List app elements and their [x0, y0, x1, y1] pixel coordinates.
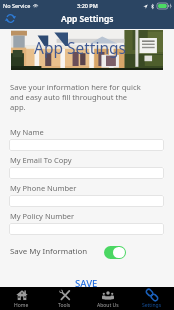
button[interactable]: Save My Information toggle: [104, 246, 126, 259]
staticText: My Email To Copy: [10, 155, 72, 165]
staticText: My Phone Number: [10, 183, 77, 193]
staticText: My Name: [10, 127, 44, 137]
button[interactable]: Refresh: [4, 12, 17, 25]
staticText: App Settings: [34, 37, 126, 58]
button[interactable]: [9, 167, 164, 179]
staticText: About Us: [97, 302, 119, 309]
staticText: 3:20 PM: [77, 2, 98, 9]
button[interactable]: [9, 195, 164, 207]
button[interactable]: About Us: [86, 287, 130, 310]
button[interactable]: [9, 139, 164, 151]
staticText: App Settings: [61, 13, 114, 25]
button[interactable]: Settings: [130, 287, 174, 310]
staticText: Home: [14, 302, 29, 309]
staticText: My Policy Number: [10, 211, 75, 221]
staticText: Save My Information: [10, 246, 88, 257]
button[interactable]: SAVE: [75, 277, 98, 290]
staticText: Save your information here for quick and…: [10, 82, 141, 112]
staticText: Tools: [58, 302, 71, 309]
staticText: No Service: [3, 2, 31, 9]
staticText: Settings: [142, 302, 162, 309]
button[interactable]: Home: [0, 287, 43, 310]
button[interactable]: [9, 223, 164, 235]
button[interactable]: Tools: [43, 287, 86, 310]
